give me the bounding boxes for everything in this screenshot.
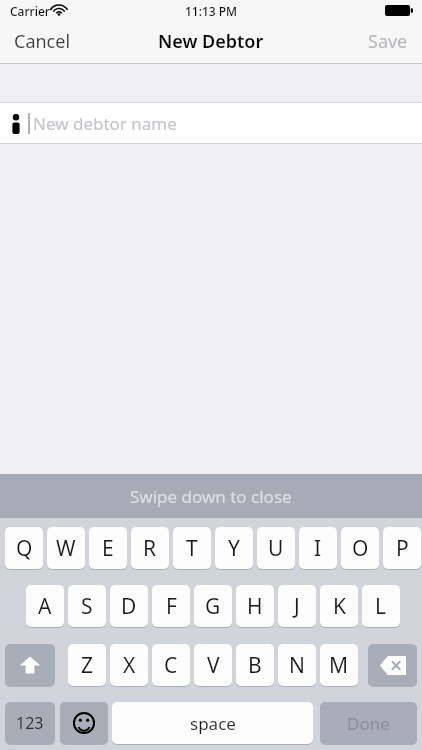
staticText: space — [190, 712, 236, 735]
staticText: T — [186, 534, 198, 563]
staticText: B — [248, 651, 262, 680]
button[interactable]: W — [47, 527, 85, 569]
button[interactable]: A — [26, 585, 64, 627]
button[interactable]: X — [110, 644, 148, 686]
button[interactable]: H — [236, 585, 274, 627]
button[interactable]: Cancel — [0, 21, 85, 62]
button[interactable]: T — [173, 527, 211, 569]
button[interactable]: N — [278, 644, 316, 686]
button[interactable]: F — [152, 585, 190, 627]
staticText: A — [38, 592, 52, 621]
button[interactable]: Shift — [5, 644, 55, 686]
staticText: E — [102, 534, 114, 563]
staticText: Z — [81, 651, 94, 680]
button[interactable]: Save — [354, 21, 422, 62]
staticText: K — [333, 592, 346, 621]
staticText: Y — [228, 534, 240, 563]
button[interactable]: G — [194, 585, 232, 627]
button[interactable]: S — [68, 585, 106, 627]
staticText: 123 — [16, 712, 44, 734]
staticText: Q — [16, 534, 33, 563]
staticText: W — [56, 534, 76, 563]
button[interactable]: L — [362, 585, 400, 627]
staticText: Save — [368, 29, 408, 54]
staticText: Cancel — [14, 29, 71, 54]
button[interactable]: O — [341, 527, 379, 569]
button[interactable]: E — [89, 527, 127, 569]
button[interactable]: New debtor name — [0, 103, 422, 143]
staticText: M — [329, 651, 349, 680]
staticText: 11:13 PM — [0, 3, 422, 19]
button[interactable]: D — [110, 585, 148, 627]
staticText: Done — [347, 712, 390, 735]
staticText: New Debtor — [158, 29, 264, 54]
staticText: U — [268, 534, 284, 563]
button[interactable]: B — [236, 644, 274, 686]
button[interactable]: Y — [215, 527, 253, 569]
button[interactable]: P — [383, 527, 421, 569]
button[interactable]: space — [112, 702, 313, 744]
button[interactable]: Backspace — [368, 644, 417, 686]
staticText: V — [207, 651, 220, 680]
button[interactable]: V — [194, 644, 232, 686]
staticText: S — [81, 592, 93, 621]
staticText: P — [396, 534, 409, 563]
button[interactable]: Done — [320, 702, 417, 744]
staticText: H — [247, 592, 263, 621]
button[interactable]: Emoji — [60, 702, 108, 744]
staticText: O — [352, 534, 369, 563]
staticText: Swipe down to close — [130, 485, 292, 508]
staticText: L — [375, 592, 387, 621]
button[interactable]: K — [320, 585, 358, 627]
staticText: N — [289, 651, 305, 680]
staticText: J — [294, 592, 300, 621]
staticText: R — [143, 534, 157, 563]
button[interactable]: Q — [5, 527, 43, 569]
button[interactable]: C — [152, 644, 190, 686]
button[interactable]: R — [131, 527, 169, 569]
staticText: Carrier — [10, 3, 50, 19]
staticText: New debtor name — [33, 112, 177, 135]
staticText: F — [166, 592, 177, 621]
staticText: I — [314, 534, 322, 563]
staticText: X — [123, 651, 136, 680]
button[interactable]: I — [299, 527, 337, 569]
staticText: D — [121, 592, 137, 621]
button[interactable]: Z — [68, 644, 106, 686]
button[interactable]: J — [278, 585, 316, 627]
staticText: G — [205, 592, 221, 621]
staticText: C — [164, 651, 178, 680]
button[interactable]: 123 — [5, 702, 55, 744]
button[interactable]: U — [257, 527, 295, 569]
button[interactable]: Swipe down to close — [0, 474, 422, 518]
button[interactable]: M — [320, 644, 358, 686]
